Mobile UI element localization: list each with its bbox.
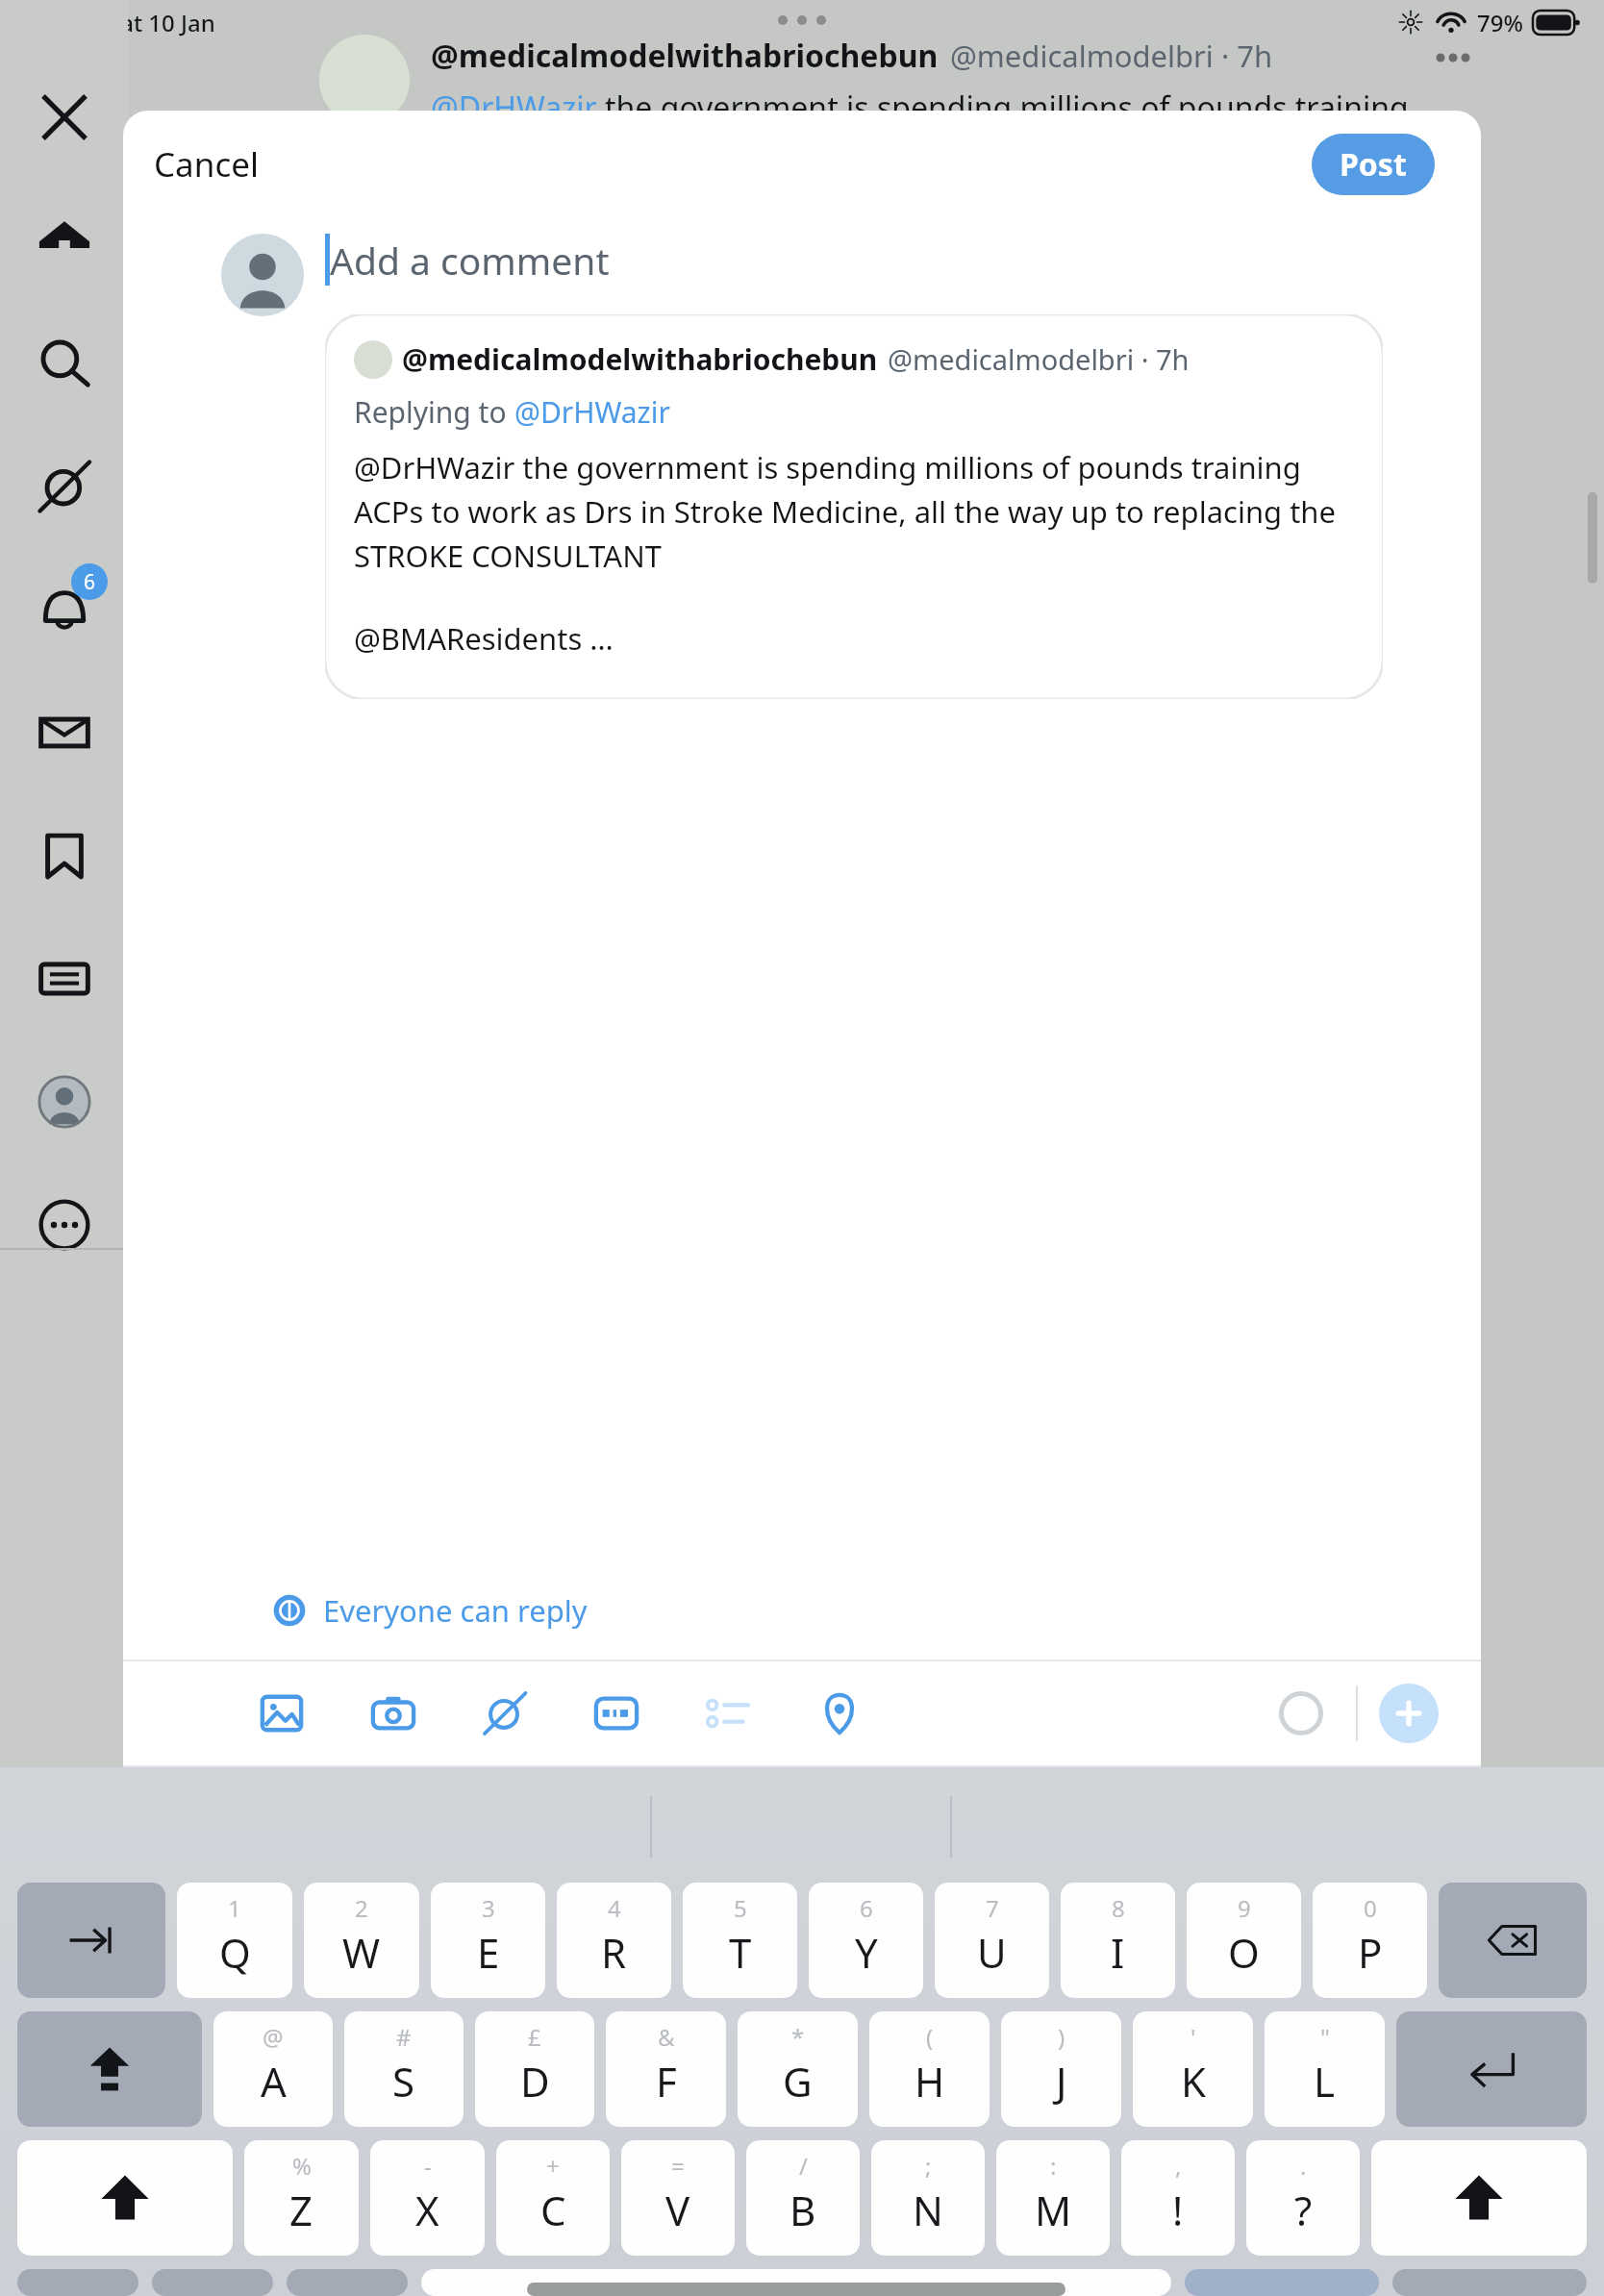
button[interactable]: 6 [809, 1883, 923, 1998]
button[interactable]: & [606, 2011, 726, 2127]
button[interactable]: Grok image [471, 1680, 539, 1747]
button[interactable]: Notifications [0, 548, 128, 671]
button[interactable]: 0 [1313, 1883, 1427, 1998]
button[interactable]: Cancel [138, 132, 274, 197]
staticText: @medicalmodelwithabriochebun [431, 35, 939, 77]
button[interactable]: Home [0, 179, 128, 302]
button[interactable]: Space [421, 2269, 1171, 2296]
button[interactable]: * [738, 2011, 858, 2127]
staticText: @medicalmodelwithabriochebun [402, 339, 878, 379]
button[interactable]: @ [213, 2011, 333, 2127]
staticText: A [261, 2054, 287, 2109]
button[interactable]: " [1265, 2011, 1385, 2127]
staticText: @DrHWazir [431, 87, 605, 129]
button[interactable]: Profile [0, 1040, 128, 1163]
button[interactable]: Post [1312, 134, 1435, 195]
staticText: 6 [860, 1892, 873, 1924]
staticText: G [783, 2054, 813, 2109]
staticText: ! [1172, 2183, 1184, 2237]
button[interactable]: Microphone [1185, 2269, 1379, 2296]
staticText: % [292, 2150, 312, 2182]
button[interactable]: 8 [1061, 1883, 1175, 1998]
button[interactable]: Messages [0, 671, 128, 794]
staticText: Cancel [154, 141, 259, 187]
button[interactable]: Tab [17, 1883, 165, 1998]
staticText: £ [528, 2021, 541, 2053]
staticText: Z [289, 2183, 313, 2237]
staticText: 2 [355, 1892, 368, 1924]
button[interactable]: . [1246, 2140, 1360, 2256]
button[interactable]: Character count [1267, 1680, 1335, 1747]
staticText: E [477, 1925, 500, 1980]
staticText: the government is spending millions of p… [605, 87, 1409, 129]
button[interactable]: Bookmarks [0, 794, 128, 917]
button[interactable]: Lists [0, 917, 128, 1040]
button[interactable]: ; [871, 2140, 985, 2256]
button[interactable]: Return [1396, 2011, 1587, 2127]
button[interactable]: : [996, 2140, 1110, 2256]
button[interactable]: / [746, 2140, 860, 2256]
button[interactable]: 9 [1187, 1883, 1301, 1998]
button[interactable]: = [621, 2140, 735, 2256]
staticText: D [520, 2054, 550, 2109]
staticText: 1 [228, 1892, 241, 1924]
button[interactable]: £ [475, 2011, 594, 2127]
button[interactable]: ' [1133, 2011, 1253, 2127]
button[interactable]: X logo [0, 56, 128, 179]
button[interactable]: Shift [1371, 2140, 1587, 2256]
button[interactable]: Add post [1379, 1684, 1439, 1743]
button[interactable]: Hide keyboard [1392, 2269, 1587, 2296]
button[interactable]: 5 [683, 1883, 797, 1998]
button[interactable]: Grok [0, 425, 128, 548]
staticText: / [799, 2150, 808, 2182]
button[interactable]: Poll [694, 1680, 762, 1747]
staticText: * [791, 2021, 805, 2053]
staticText: 4 [608, 1892, 621, 1924]
staticText: 6 [84, 568, 96, 596]
staticText: Q [219, 1925, 251, 1980]
button[interactable]: 7 [935, 1883, 1049, 1998]
button[interactable]: + [496, 2140, 610, 2256]
staticText: . [1300, 2150, 1307, 2182]
button[interactable]: Emoji [287, 2269, 408, 2296]
button[interactable]: More [0, 1163, 128, 1286]
button[interactable]: 2 [304, 1883, 419, 1998]
button[interactable]: GIF [583, 1680, 650, 1747]
button[interactable]: 3 [431, 1883, 545, 1998]
button[interactable]: Numbers [152, 2269, 273, 2296]
button[interactable]: , [1121, 2140, 1235, 2256]
button[interactable]: Camera [360, 1680, 427, 1747]
button[interactable]: ) [1001, 2011, 1121, 2127]
button[interactable]: Location [806, 1680, 873, 1747]
staticText: : [1050, 2150, 1057, 2182]
button[interactable]: ( [869, 2011, 990, 2127]
staticText: N [913, 2183, 943, 2237]
button[interactable]: Shift [17, 2140, 233, 2256]
button[interactable]: Search [0, 302, 128, 425]
staticText: - [424, 2150, 432, 2182]
staticText: Everyone can reply [323, 1590, 588, 1631]
button[interactable]: Globe [17, 2269, 138, 2296]
button[interactable]: 1 [177, 1883, 292, 1998]
button[interactable]: 4 [557, 1883, 671, 1998]
staticText: X [415, 2183, 439, 2237]
staticText: , [1175, 2150, 1182, 2182]
button[interactable]: Backspace [1439, 1883, 1587, 1998]
staticText: W [342, 1925, 381, 1980]
staticText: ( [926, 2021, 934, 2053]
staticText: F [656, 2054, 677, 2109]
button[interactable]: # [344, 2011, 464, 2127]
staticText: ) [1058, 2021, 1065, 2053]
button[interactable]: - [370, 2140, 485, 2256]
button[interactable]: Everyone can reply [265, 1585, 595, 1636]
staticText: M [1035, 2183, 1072, 2237]
button[interactable]: Add photo [248, 1680, 315, 1747]
button[interactable]: @medicalmodelwithabriochebun [325, 314, 1383, 699]
staticText: & [658, 2021, 675, 2053]
button[interactable]: Caps lock [17, 2011, 202, 2127]
staticText: + [546, 2150, 560, 2182]
button[interactable]: % [244, 2140, 359, 2256]
staticText: ; [925, 2150, 932, 2182]
staticText: Post [1340, 143, 1407, 186]
